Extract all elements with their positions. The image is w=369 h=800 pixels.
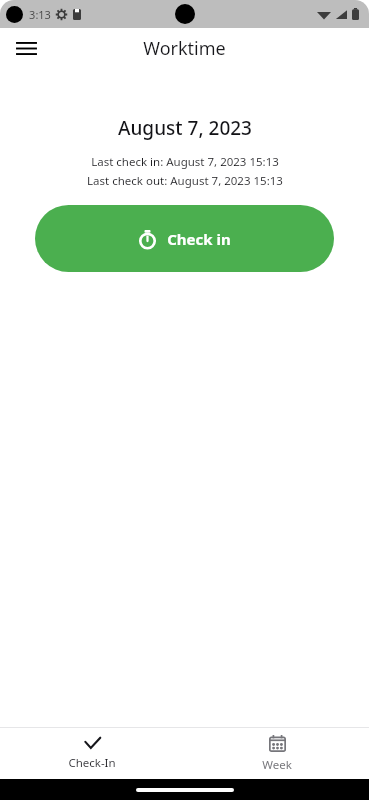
button[interactable]: Open navigation menu: [8, 30, 44, 66]
staticText: Last check in: August 7, 2023 15:13: [91, 154, 279, 170]
staticText: August 7, 2023: [118, 115, 252, 141]
button[interactable]: Week: [184, 728, 369, 779]
staticText: Check in: [167, 229, 231, 249]
staticText: Last check out: August 7, 2023 15:13: [87, 173, 283, 189]
staticText: Worktime: [143, 36, 226, 61]
staticText: 3:13: [29, 7, 51, 22]
staticText: Check-In: [68, 755, 116, 771]
button[interactable]: Check-In: [0, 728, 184, 779]
button[interactable]: Check in: [35, 205, 334, 272]
staticText: Week: [262, 757, 292, 773]
